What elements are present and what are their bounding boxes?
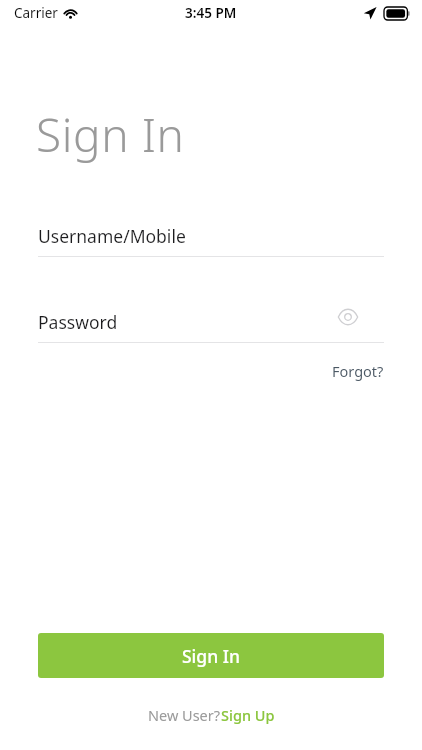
button[interactable]: Forgot?: [292, 358, 384, 384]
staticText: Carrier: [14, 4, 58, 22]
staticText: 3:45 PM: [185, 4, 237, 22]
staticText: New User?: [148, 705, 221, 725]
button[interactable]: Sign Up: [221, 705, 275, 725]
button[interactable]: Username/Mobile: [38, 214, 384, 258]
button[interactable]: Password: [38, 300, 338, 344]
staticText: Username/Mobile: [38, 224, 186, 248]
staticText: Sign In: [36, 103, 185, 166]
staticText: Sign Up: [221, 705, 275, 725]
staticText: Forgot?: [332, 361, 384, 381]
staticText: Sign In: [182, 644, 240, 668]
button[interactable]: Show password: [332, 301, 364, 333]
staticText: Password: [38, 310, 118, 334]
button[interactable]: Sign In: [38, 633, 384, 678]
